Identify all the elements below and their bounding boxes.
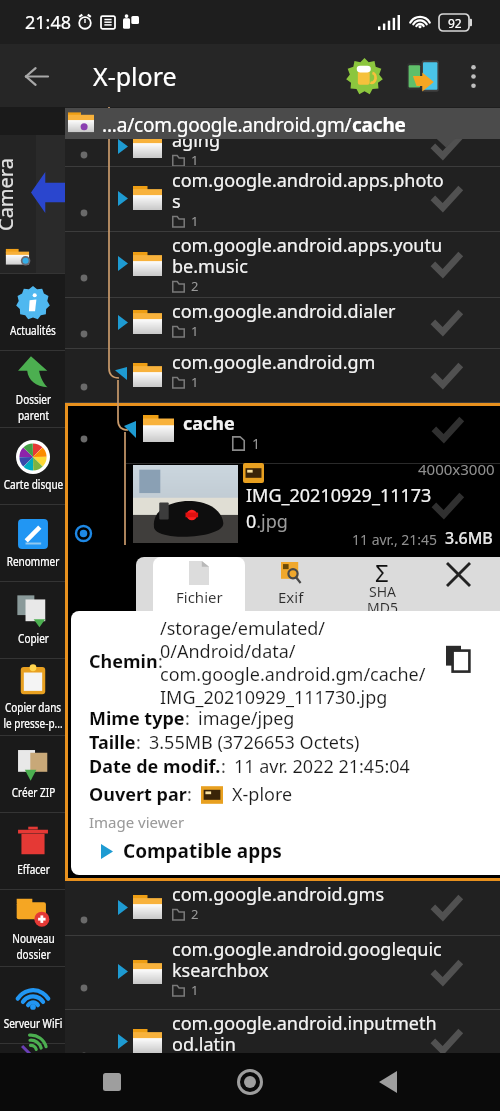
button[interactable]: Renommer — [0, 505, 65, 581]
staticText: 1 — [191, 322, 199, 340]
staticText: 1 — [252, 434, 261, 453]
button[interactable]: Fichier — [153, 557, 245, 611]
button[interactable]: Camera — [0, 135, 65, 273]
button[interactable]: com.google.android.gms — [65, 881, 500, 936]
staticText: Carte disque — [3, 476, 63, 493]
staticText: Compatible apps — [123, 838, 282, 864]
staticText: 2 — [191, 277, 199, 295]
button[interactable]: com.google.android.googlequicksearchbox — [65, 936, 500, 1010]
button[interactable]: 4000x3000 — [68, 457, 500, 557]
staticText: 21:48 — [25, 10, 72, 35]
staticText: 3.55MB (3726653 Octets) — [149, 730, 360, 755]
staticText: com.google.android.inputmethod.latin — [172, 1011, 444, 1053]
button[interactable]: Transfer files — [399, 52, 447, 100]
button[interactable]: com.google.android.inputmethod.latin — [65, 1010, 500, 1053]
button[interactable]: com.google.android.apps.photos — [65, 167, 500, 232]
staticText: 11 avr., 21:45 — [352, 530, 438, 549]
staticText: 1 — [191, 373, 199, 391]
staticText: 4000x3000 — [418, 459, 495, 479]
staticText: 11 avr. 2022 21:45:04 — [234, 754, 410, 779]
staticText: IMG_20210929_111730.jpg — [246, 483, 432, 534]
button[interactable]: Recents — [86, 1056, 138, 1108]
staticText: Actualités — [10, 322, 56, 339]
staticText: com.google.android.apps.youtube.music — [172, 233, 444, 279]
staticText: Fichier — [176, 587, 223, 607]
staticText: 1 — [191, 212, 199, 230]
button[interactable]: Back — [362, 1056, 414, 1108]
button[interactable]: Copy path — [443, 644, 473, 674]
button[interactable]: Actualités — [0, 274, 65, 350]
button[interactable]: com.google.android.apps.youtube.music — [65, 232, 500, 298]
staticText: : — [185, 706, 190, 731]
staticText: /storage/emulated/ 0/Android/data/ com.g… — [160, 616, 426, 709]
staticText: 92 — [448, 15, 462, 31]
button[interactable]: Compatible apps — [101, 838, 282, 864]
staticText: com.google.android.gm — [172, 350, 376, 375]
button[interactable]: Nouveau dossier — [0, 890, 65, 966]
staticText: Exif — [278, 587, 304, 607]
button[interactable]: Créer ZIP — [0, 736, 65, 812]
button[interactable]: Serveur FTP — [0, 1044, 65, 1053]
staticText: Camera — [0, 158, 19, 231]
button[interactable]: Serveur WiFi — [0, 967, 65, 1043]
staticText: : — [187, 782, 192, 807]
staticText: ...a/com.google.android.gm/ — [102, 112, 352, 138]
button[interactable]: Exif — [251, 557, 331, 611]
staticText: 3.6MB — [445, 527, 493, 549]
button[interactable]: ...a/com.google.android.gm/ — [65, 108, 500, 139]
button[interactable]: com.google.android.gm — [65, 349, 500, 403]
staticText: com.google.android.gms — [172, 882, 385, 907]
staticText: Σ — [375, 557, 389, 589]
staticText: Créer ZIP — [11, 784, 55, 801]
staticText: Dossier parent — [15, 391, 51, 423]
staticText: com.google.android.apps.photos — [172, 168, 444, 214]
staticText: : — [221, 754, 226, 779]
staticText: Ouvert par — [89, 782, 187, 807]
staticText: X-plore — [232, 782, 293, 807]
button[interactable]: aging — [65, 127, 500, 167]
staticText: Nouveau dossier — [12, 930, 55, 962]
button[interactable]: Σ — [342, 557, 422, 611]
staticText: 2 — [191, 905, 199, 923]
staticText: X-plore — [93, 59, 177, 93]
staticText: Taille — [89, 730, 136, 755]
button[interactable]: Donate — [340, 52, 388, 100]
button[interactable]: com.google.android.dialer — [65, 298, 500, 349]
button[interactable]: Copier dans le presse-p... — [0, 659, 65, 735]
staticText: cache — [183, 411, 235, 436]
staticText: Serveur WiFi — [3, 1015, 63, 1032]
button[interactable]: Back — [12, 52, 60, 100]
button[interactable]: Copier — [0, 582, 65, 658]
staticText: cache — [352, 112, 406, 138]
staticText: Mime type — [89, 706, 185, 731]
staticText: SHA MD5 — [367, 582, 398, 611]
button[interactable]: Effacer — [0, 813, 65, 889]
staticText: Date de modif. — [89, 754, 221, 779]
staticText: Effacer — [17, 861, 50, 878]
staticText: : — [136, 730, 141, 755]
staticText: : — [158, 649, 163, 674]
staticText: Copier dans le presse-p... — [3, 699, 63, 731]
button[interactable]: Close — [433, 557, 485, 611]
staticText: Copier — [18, 630, 49, 647]
button[interactable]: cache — [68, 406, 500, 457]
staticText: Renommer — [7, 553, 59, 570]
staticText: 1 — [191, 981, 199, 999]
staticText: com.google.android.googlequicksearchbox — [172, 937, 444, 983]
button[interactable]: Carte disque — [0, 428, 65, 504]
staticText: 1 — [191, 151, 199, 169]
staticText: com.google.android.dialer — [172, 299, 396, 324]
button[interactable]: More options — [451, 54, 495, 98]
staticText: aging — [172, 128, 221, 153]
staticText: image/jpeg — [198, 706, 295, 731]
staticText: Image viewer — [89, 812, 185, 832]
button[interactable]: Home — [224, 1056, 276, 1108]
staticText: Chemin — [89, 649, 158, 674]
button[interactable]: Dossier parent — [0, 351, 65, 427]
